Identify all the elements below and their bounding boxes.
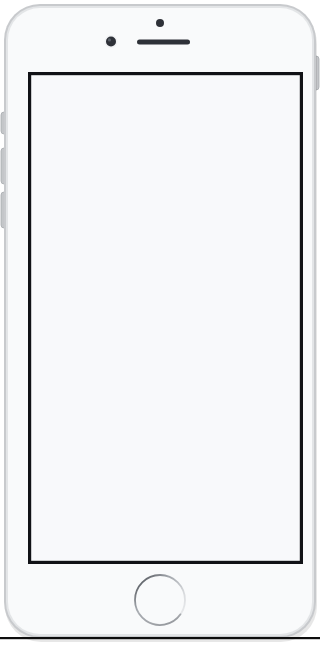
button[interactable]: iPhone device mockup with blank screen bbox=[0, 0, 320, 646]
